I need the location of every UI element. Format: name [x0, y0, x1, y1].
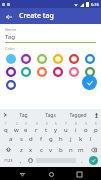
button[interactable]: Enter [89, 156, 98, 165]
staticText: q [4, 126, 8, 133]
button[interactable]: Color swatch [84, 53, 96, 65]
staticText: o [84, 126, 88, 133]
button[interactable]: Shift [0, 144, 16, 155]
staticText: n [69, 146, 73, 154]
staticText: t [45, 126, 48, 133]
button[interactable]: j [66, 133, 76, 144]
button[interactable]: Backspace [86, 144, 101, 155]
button[interactable]: x [26, 144, 36, 155]
staticText: u [64, 126, 68, 133]
button[interactable]: Save tag [82, 75, 97, 90]
staticText: x [29, 146, 33, 154]
button[interactable]: 3 [21, 122, 31, 133]
button[interactable]: Comma [16, 155, 26, 166]
staticText: 0 [95, 122, 97, 126]
button[interactable]: Color swatch [52, 66, 64, 78]
staticText: l [90, 135, 92, 143]
button[interactable]: Color swatch [5, 66, 17, 78]
button[interactable]: 4 [31, 122, 41, 133]
staticText: 6:36 [91, 2, 99, 7]
staticText: 4 [36, 122, 38, 126]
button[interactable]: Tagged [64, 109, 91, 121]
button[interactable]: Period [77, 155, 86, 166]
button[interactable]: c [36, 144, 46, 155]
staticText: s [20, 135, 23, 143]
button[interactable]: Tags [37, 109, 64, 121]
button[interactable]: 9 [81, 122, 91, 133]
button[interactable]: Voice input [91, 109, 101, 121]
button[interactable]: Recent apps [73, 168, 85, 180]
staticText: b [59, 146, 63, 154]
button[interactable]: f [36, 133, 46, 144]
staticText: j [70, 135, 72, 143]
button[interactable]: Color swatch [36, 53, 48, 65]
button[interactable]: Home [45, 168, 57, 180]
staticText: w [14, 126, 19, 133]
staticText: a [9, 135, 13, 143]
button[interactable]: Color swatch [36, 66, 48, 78]
staticText: m [78, 146, 84, 154]
button[interactable]: 8 [71, 122, 81, 133]
button[interactable]: s [16, 133, 26, 144]
button[interactable]: Color swatch [68, 53, 80, 65]
staticText: Color [5, 46, 16, 51]
staticText: c [40, 146, 43, 154]
button[interactable]: 6 [51, 122, 61, 133]
button[interactable]: d [26, 133, 36, 144]
staticText: 1 [5, 122, 7, 126]
button[interactable]: ?123 [0, 155, 16, 166]
button[interactable]: 1 [0, 122, 11, 133]
staticText: i [75, 126, 77, 133]
staticText: Tagged [69, 112, 87, 119]
button[interactable]: Back [16, 168, 28, 180]
staticText: ?123 [4, 158, 13, 163]
staticText: k [79, 135, 83, 143]
button[interactable]: Color swatch [84, 66, 96, 78]
staticText: 2 [16, 122, 18, 126]
button[interactable]: Color swatch [68, 66, 80, 78]
button[interactable]: Tag [5, 33, 96, 43]
button[interactable]: v [46, 144, 56, 155]
button[interactable]: a [6, 133, 16, 144]
staticText: 3 [25, 122, 27, 126]
staticText: . [81, 157, 83, 165]
button[interactable]: Color swatch [5, 53, 17, 65]
button[interactable]: Color swatch [20, 53, 32, 65]
staticText: 5 [46, 122, 48, 126]
button[interactable]: Expand suggestions [0, 109, 10, 121]
button[interactable]: 5 [41, 122, 51, 133]
button[interactable]: Color swatch [52, 53, 64, 65]
staticText: Create tag [19, 11, 54, 21]
button[interactable]: 7 [61, 122, 71, 133]
staticText: 6 [55, 122, 57, 126]
staticText: f [40, 135, 43, 143]
button[interactable]: 2 [11, 122, 21, 133]
button[interactable]: 0 [91, 122, 101, 133]
staticText: d [29, 135, 33, 143]
staticText: Tag [5, 33, 15, 41]
button[interactable]: n [66, 144, 76, 155]
button[interactable]: k [76, 133, 86, 144]
button[interactable]: Tag [10, 109, 37, 121]
button[interactable]: Color swatch [5, 79, 17, 91]
staticText: Tag [19, 112, 28, 119]
staticText: Name [5, 27, 17, 32]
staticText: , [20, 157, 22, 165]
staticText: Tags [45, 112, 56, 119]
button[interactable]: Emoji [26, 155, 35, 166]
button[interactable]: h [56, 133, 66, 144]
staticText: h [59, 135, 63, 143]
staticText: 8 [75, 122, 77, 126]
button[interactable]: g [46, 133, 56, 144]
button[interactable]: Back [3, 11, 14, 22]
staticText: r [35, 126, 38, 133]
button[interactable]: b [56, 144, 66, 155]
staticText: z [20, 146, 23, 154]
button[interactable]: l [86, 133, 96, 144]
staticText: g [49, 135, 53, 143]
button[interactable]: Color swatch [20, 66, 32, 78]
button[interactable]: m [76, 144, 86, 155]
staticText: y [54, 126, 58, 133]
button[interactable]: z [16, 144, 26, 155]
